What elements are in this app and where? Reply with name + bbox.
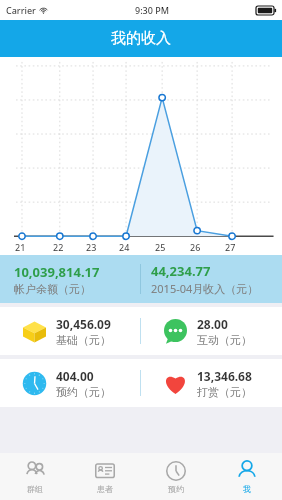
- staticText: 患者: [97, 484, 113, 494]
- staticText: 28.00: [197, 316, 228, 332]
- staticText: 10,039,814.17: [14, 263, 100, 281]
- staticText: 基础（元）: [56, 333, 111, 347]
- staticText: 我的收入: [111, 29, 171, 48]
- staticText: 互动（元）: [197, 333, 252, 347]
- staticText: 23: [86, 241, 97, 253]
- button[interactable]: 患者: [70, 453, 140, 500]
- staticText: 22: [53, 241, 64, 253]
- other: 患者: [94, 460, 116, 482]
- button[interactable]: 13,346.68: [141, 359, 282, 407]
- button[interactable]: 群组: [0, 453, 70, 500]
- staticText: 25: [155, 241, 166, 253]
- button[interactable]: 28.00: [141, 307, 282, 355]
- staticText: 44,234.77: [151, 262, 211, 280]
- staticText: 打赏（元）: [197, 385, 252, 399]
- staticText: 26: [190, 241, 201, 253]
- staticText: 帐户余额（元）: [14, 282, 91, 296]
- staticText: 13,346.68: [197, 368, 252, 384]
- other: 我: [236, 460, 258, 482]
- staticText: 21: [15, 241, 26, 253]
- staticText: 预约（元）: [56, 385, 111, 399]
- staticText: Carrier: [6, 4, 36, 16]
- other: 预约: [165, 460, 187, 482]
- staticText: 预约: [168, 484, 184, 494]
- staticText: 2015-04月收入（元）: [151, 281, 259, 296]
- staticText: 群组: [27, 484, 43, 494]
- button[interactable]: 30,456.09: [0, 307, 140, 355]
- staticText: 24: [119, 241, 130, 253]
- button[interactable]: 404.00: [0, 359, 140, 407]
- button[interactable]: 我: [211, 453, 282, 500]
- staticText: 404.00: [56, 368, 94, 384]
- other: 群组: [24, 460, 46, 482]
- button[interactable]: 预约: [140, 453, 211, 500]
- staticText: 27: [225, 241, 236, 253]
- staticText: 9:30 PM: [135, 4, 169, 16]
- staticText: 我: [243, 484, 251, 494]
- staticText: 30,456.09: [56, 316, 111, 332]
